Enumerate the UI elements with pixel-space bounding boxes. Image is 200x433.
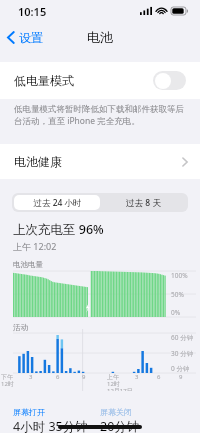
staticText: 活动 [13,323,28,332]
staticText: 屏幕打开 [13,407,45,417]
staticText: 10:15 [18,4,47,19]
button[interactable]: 低电量模式 [0,62,200,99]
staticText: 60 分钟 [171,333,194,342]
staticText: 过去 24 小时 [33,197,82,209]
button[interactable]: Low Power Mode toggle [153,71,186,90]
staticText: 低电量模式将暂时降低如下载和邮件获取等后台活动，直至 iPhone 完全充电。 [14,104,184,126]
staticText: 0 分钟 [171,364,190,373]
staticText: 上午 12:02 [13,240,57,252]
staticText: 设置 [19,30,43,45]
staticText: 下午 12时 [1,373,14,388]
staticText: 100% [171,271,188,280]
staticText: 50% [171,290,184,299]
staticText: 电池电量 [13,260,43,269]
staticText: 6 [56,373,60,381]
staticText: 过去 8 天 [126,197,161,209]
staticText: 电池 [87,29,113,45]
button[interactable]: 过去 24 小时 [14,195,100,210]
button[interactable]: 过去 8 天 [100,195,186,210]
staticText: 9 [82,373,86,381]
button[interactable]: 电池健康 [0,144,200,179]
staticText: 屏幕关闭 [100,407,132,417]
button[interactable]: 设置 [0,26,51,49]
staticText: 上午 12时 12月17日 [107,373,133,391]
staticText: 3 [135,373,139,381]
staticText: 30 分钟 [171,349,194,358]
staticText: 4小时 35分钟 [13,418,88,433]
staticText: 9 [179,373,183,381]
staticText: 6 [157,373,161,381]
staticText: 电池健康 [14,154,182,169]
staticText: 3 [29,373,33,381]
staticText: 低电量模式 [14,73,153,88]
staticText: 上次充电至 96% [13,221,104,238]
staticText: 0% [171,308,181,317]
staticText: 20分钟 [100,418,140,433]
